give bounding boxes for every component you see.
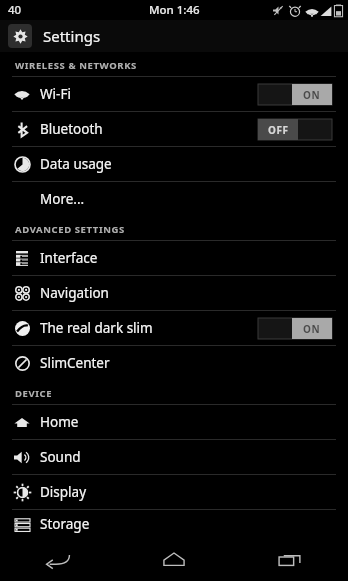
staticText: The real dark slim	[40, 319, 153, 337]
staticText: Sound	[40, 448, 81, 466]
staticText: SlimCenter	[40, 354, 110, 372]
staticText: DEVICE	[15, 387, 53, 400]
button[interactable]: Sound	[0, 440, 348, 474]
staticText: ADVANCED SETTINGS	[15, 223, 125, 236]
staticText: Storage	[40, 515, 90, 533]
staticText: Wi-Fi	[40, 85, 71, 103]
button[interactable]: SlimCenter	[0, 346, 348, 380]
button[interactable]: Data usage	[0, 147, 348, 181]
staticText: Navigation	[40, 284, 109, 302]
staticText: Data usage	[40, 155, 112, 173]
staticText: Interface	[40, 249, 98, 267]
button[interactable]: Display	[0, 475, 348, 509]
button[interactable]: Interface	[0, 241, 348, 275]
button[interactable]: Home	[0, 405, 348, 439]
staticText: ON	[303, 322, 321, 336]
staticText: 40	[8, 2, 22, 18]
button[interactable]: More...	[0, 182, 348, 216]
staticText: Home	[40, 413, 79, 431]
staticText: ON	[303, 88, 321, 102]
staticText: Bluetooth	[40, 120, 103, 138]
staticText: Settings	[43, 26, 101, 46]
button[interactable]: Toggle on	[258, 84, 332, 105]
button[interactable]: Bluetooth	[0, 112, 348, 146]
button[interactable]: Storage	[0, 510, 348, 537]
button[interactable]: Home	[116, 537, 232, 581]
button[interactable]: Wi-Fi	[0, 77, 348, 111]
button[interactable]: Settings	[0, 20, 348, 52]
staticText: WIRELESS & NETWORKS	[15, 59, 137, 72]
staticText: Mon 1:46	[149, 2, 200, 18]
button[interactable]: Recent apps	[232, 537, 348, 581]
button[interactable]: Back	[0, 537, 116, 581]
button[interactable]: The real dark slim	[0, 311, 348, 345]
button[interactable]: Navigation	[0, 276, 348, 310]
button[interactable]: Toggle off	[258, 119, 332, 140]
staticText: More...	[40, 190, 85, 208]
button[interactable]: Toggle on	[258, 318, 332, 339]
staticText: Display	[40, 483, 87, 501]
staticText: OFF	[268, 123, 289, 137]
